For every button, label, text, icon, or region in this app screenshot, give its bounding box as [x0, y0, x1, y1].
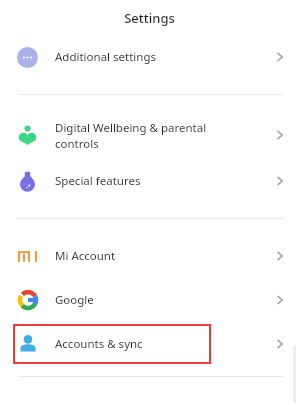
staticText: Mi Account	[55, 248, 250, 264]
staticText: Digital Wellbeing & parental controls	[55, 120, 250, 151]
button[interactable]: Digital Wellbeing & parental controls	[0, 111, 298, 159]
staticText: Google	[55, 292, 250, 308]
staticText: Special features	[55, 173, 250, 189]
button[interactable]: Accounts & sync	[0, 322, 298, 366]
staticText: Settings	[124, 9, 175, 27]
button[interactable]: Mi Account	[0, 234, 298, 278]
button[interactable]: Google	[0, 278, 298, 322]
button[interactable]: Special features	[0, 159, 298, 203]
staticText: Accounts & sync	[55, 336, 250, 352]
button[interactable]: Additional settings	[0, 36, 298, 78]
staticText: Additional settings	[55, 49, 250, 65]
